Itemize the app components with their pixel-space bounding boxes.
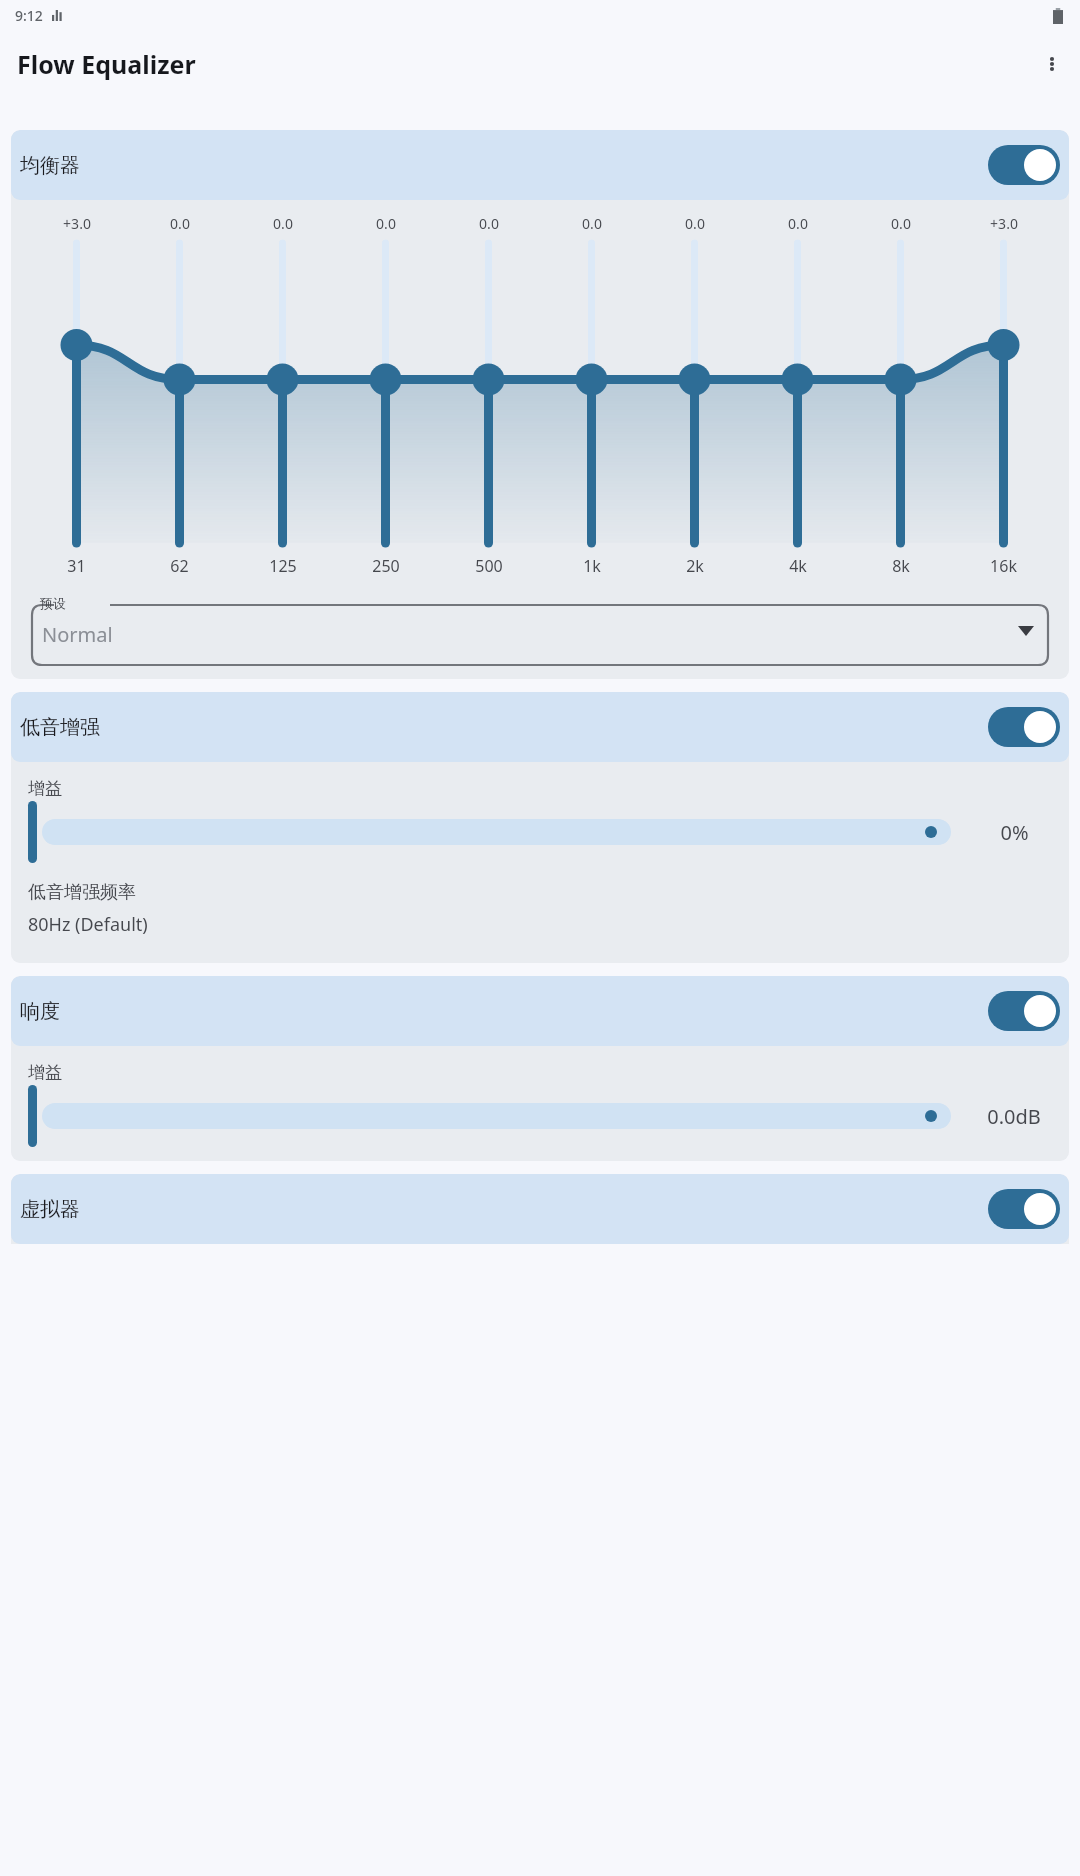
staticText: 62 (170, 555, 189, 577)
staticText: 0.0 (376, 214, 396, 233)
staticText: 1k (583, 555, 601, 577)
staticText: 均衡器 (20, 153, 80, 178)
staticText: 31 (67, 555, 86, 577)
staticText: 0.0 (582, 214, 602, 233)
staticText: 16k (990, 555, 1017, 577)
staticText: 4k (789, 555, 807, 577)
staticText: 低音增强 (20, 715, 100, 740)
staticText: 8k (892, 555, 910, 577)
button[interactable]: 低音增强 (11, 692, 1069, 762)
button[interactable]: Toggle (988, 1189, 1060, 1229)
staticText: 0.0 (479, 214, 499, 233)
staticText: +3.0 (990, 214, 1018, 233)
staticText: 250 (372, 555, 400, 577)
staticText: 80Hz (Default) (28, 912, 148, 937)
staticText: 低音增强频率 (28, 881, 136, 904)
staticText: 0.0 (891, 214, 911, 233)
staticText: 0.0 (788, 214, 808, 233)
button[interactable]: Toggle (988, 707, 1060, 747)
staticText: 响度 (20, 999, 60, 1024)
staticText: 500 (475, 555, 503, 577)
staticText: 9:12 (15, 6, 43, 25)
staticText: 0.0 (685, 214, 705, 233)
staticText: 0.0 (273, 214, 293, 233)
staticText: 预设 (40, 595, 66, 611)
button[interactable] (28, 805, 951, 859)
staticText: Flow Equalizer (17, 47, 196, 81)
button[interactable]: 虚拟器 (11, 1174, 1069, 1244)
staticText: 增益 (28, 1062, 62, 1083)
staticText: 0.0 (170, 214, 190, 233)
staticText: 125 (269, 555, 297, 577)
button[interactable]: More options (1032, 44, 1072, 84)
staticText: 0.0dB (987, 1103, 1041, 1130)
button[interactable]: Toggle (988, 991, 1060, 1031)
button[interactable] (28, 1089, 951, 1143)
staticText: 2k (686, 555, 704, 577)
staticText: +3.0 (63, 214, 91, 233)
button[interactable]: Toggle (988, 145, 1060, 185)
staticText: 虚拟器 (20, 1197, 80, 1222)
button[interactable]: 响度 (11, 976, 1069, 1046)
button[interactable]: 均衡器 (11, 130, 1069, 200)
staticText: 增益 (28, 778, 62, 799)
staticText: Normal (42, 621, 113, 648)
staticText: 0% (1000, 819, 1029, 846)
